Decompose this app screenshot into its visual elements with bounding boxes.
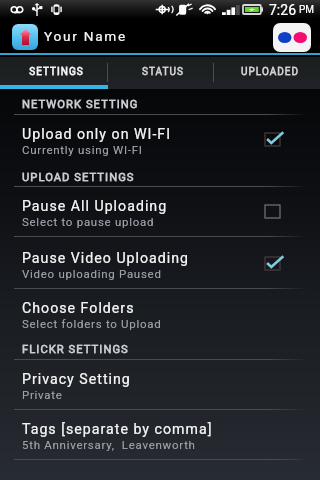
staticText: Select to pause upload	[22, 215, 155, 228]
staticText: Pause All Uploading	[22, 198, 168, 215]
staticText: Pause Video Uploading	[22, 250, 190, 267]
button[interactable]: SETTINGS	[3, 57, 109, 86]
button[interactable]: Pause All Uploading	[0, 187, 320, 237]
staticText: SETTINGS	[29, 66, 84, 78]
staticText: Upload only on WI-FI	[22, 126, 172, 143]
staticText: Your Name	[44, 28, 127, 44]
staticText: Video uploading Paused	[22, 267, 162, 280]
staticText: Select folders to Upload	[22, 317, 162, 330]
staticText: FLICKR SETTINGS	[22, 343, 129, 356]
button[interactable]: Flickr	[273, 23, 311, 52]
staticText: Private	[22, 388, 63, 401]
staticText: STATUS	[142, 66, 184, 78]
staticText: Currently using WI-FI	[22, 143, 143, 156]
button[interactable]: STATUS	[109, 57, 216, 86]
button[interactable]: UPLOADED	[216, 57, 320, 86]
button[interactable]: Upload only on WI-FI	[0, 115, 320, 165]
staticText: Tags [separate by comma]	[22, 421, 213, 438]
staticText: PM	[299, 4, 315, 16]
button[interactable]: Privacy Setting	[0, 360, 320, 410]
staticText: 7:26	[269, 2, 296, 18]
button[interactable]: Pause Video Uploading	[0, 239, 320, 289]
staticText: UPLOADED	[241, 66, 299, 78]
staticText: UPLOAD SETTINGS	[22, 171, 135, 184]
staticText: 5th Anniversary, Leavenworth	[22, 438, 196, 451]
button[interactable]: Choose Folders	[0, 289, 320, 339]
staticText: Choose Folders	[22, 300, 135, 317]
staticText: NETWORK SETTING	[22, 98, 139, 111]
button[interactable]: Uploader	[12, 24, 38, 50]
staticText: Privacy Setting	[22, 371, 131, 388]
button[interactable]: Tags [separate by comma]	[0, 410, 320, 460]
